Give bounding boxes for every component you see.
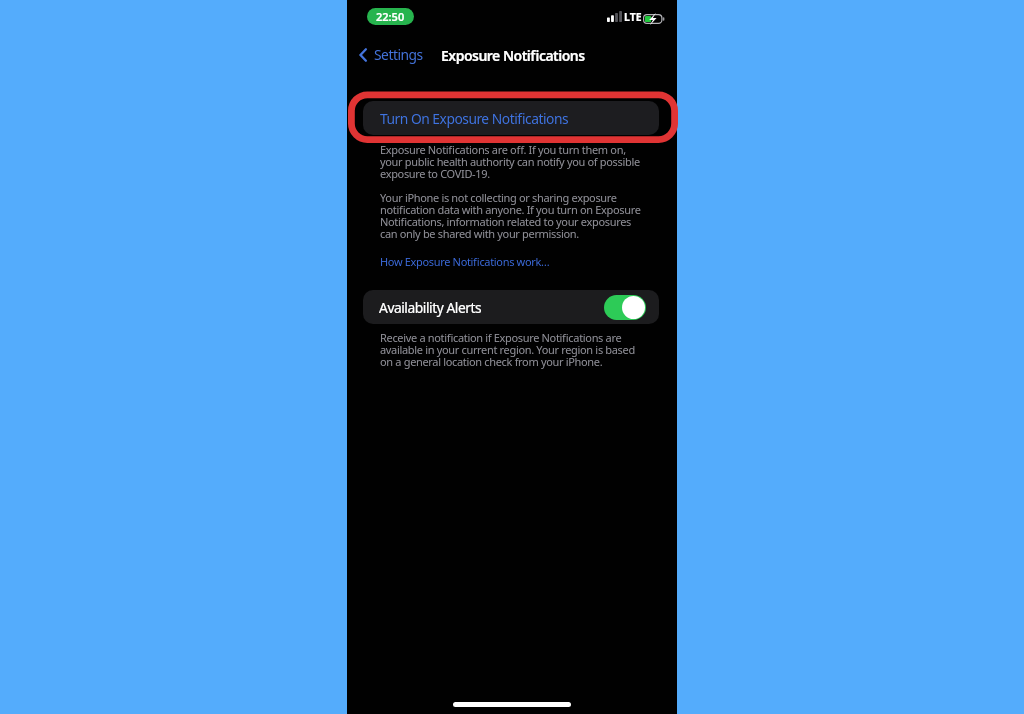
staticText: Exposure Notifications are off. If you t… xyxy=(380,142,641,241)
staticText: Receive a notification if Exposure Notif… xyxy=(380,330,635,369)
button[interactable]: Availability Alerts toggle xyxy=(604,295,646,320)
staticText: 22:50 xyxy=(376,9,405,24)
staticText: Turn On Exposure Notifications xyxy=(380,109,569,128)
button[interactable]: Turn On Exposure Notifications xyxy=(363,101,659,135)
button[interactable]: Availability Alerts xyxy=(363,290,659,324)
staticText: Availability Alerts xyxy=(379,298,482,317)
staticText: Settings xyxy=(374,45,423,64)
button[interactable]: Back to Settings xyxy=(354,42,429,67)
staticText: Exposure Notifications xyxy=(441,46,585,65)
staticText: How Exposure Notifications work… xyxy=(380,254,550,269)
button[interactable]: How Exposure Notifications work… xyxy=(380,254,550,269)
staticText: LTE xyxy=(624,10,642,24)
